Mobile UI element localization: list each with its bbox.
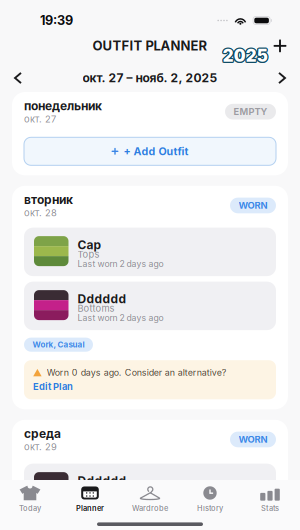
button[interactable]: Previous week [6, 67, 30, 89]
staticText: 2025 [223, 44, 268, 65]
button[interactable]: Stats [240, 484, 300, 514]
staticText: 2025 [224, 45, 269, 65]
button[interactable]: Today [0, 484, 60, 514]
staticText: Tops [77, 249, 99, 260]
button[interactable]: Planner [60, 484, 120, 514]
staticText: Work, Casual [32, 340, 84, 349]
staticText: Worn 0 days ago. Consider an alternative… [47, 367, 227, 378]
staticText: 2025 [224, 47, 269, 67]
staticText: Bottoms [77, 485, 114, 496]
staticText: 2025 [222, 45, 267, 65]
staticText: 19:39 [40, 13, 73, 28]
staticText: Today [19, 504, 41, 513]
staticText: Dddddd [77, 292, 126, 306]
staticText: Last worn 2 days ago [77, 495, 163, 505]
staticText: WORN [238, 434, 267, 445]
button[interactable]: Add outfit [270, 36, 290, 56]
staticText: WORN [238, 200, 267, 211]
staticText: Wardrobe [132, 504, 168, 513]
staticText: окт. 27 [24, 113, 56, 125]
button[interactable]: + Add Outfit [24, 137, 276, 165]
staticText: 2025 [224, 46, 269, 66]
staticText: 2025 [223, 47, 268, 67]
staticText: Dddddd [77, 474, 126, 488]
button[interactable]: Edit Plan [33, 381, 73, 392]
staticText: 2025 [222, 47, 267, 67]
staticText: Edit Plan [33, 381, 73, 392]
button[interactable]: Next week [270, 67, 294, 89]
staticText: 2025 [221, 46, 266, 66]
staticText: вторник [24, 192, 73, 207]
staticText: OUTFIT PLANNER [92, 38, 207, 54]
button[interactable]: History [180, 484, 240, 514]
staticText: History [197, 504, 223, 513]
staticText: окт. 27 – нояб. 2, 2025 [82, 71, 217, 85]
staticText: Bottoms [77, 303, 114, 314]
staticText: Last worn 2 days ago [77, 259, 163, 269]
staticText: окт. 28 [24, 207, 57, 219]
staticText: Stats [261, 504, 279, 513]
staticText: окт. 29 [24, 441, 57, 453]
button[interactable]: Wardrobe [120, 484, 180, 514]
staticText: EMPTY [233, 106, 267, 117]
staticText: 2025 [223, 46, 268, 66]
staticText: Planner [76, 504, 104, 513]
staticText: среда [24, 426, 61, 441]
staticText: Last worn 2 days ago [77, 313, 163, 323]
staticText: + Add Outfit [123, 145, 188, 158]
staticText: Cap [77, 238, 101, 252]
staticText: понедельник [24, 98, 102, 113]
